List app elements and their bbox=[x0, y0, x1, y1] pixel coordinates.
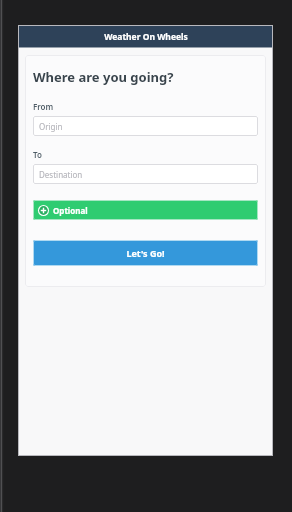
staticText: Destination bbox=[39, 169, 83, 180]
button[interactable]: Let's Go! bbox=[33, 240, 258, 266]
button[interactable]: Destination bbox=[33, 164, 258, 184]
staticText: Origin bbox=[39, 121, 63, 132]
staticText: Let's Go! bbox=[126, 247, 165, 259]
staticText: Weather On Wheels bbox=[104, 31, 188, 43]
other: Add optional stop bbox=[38, 205, 49, 216]
staticText: Optional bbox=[53, 205, 88, 216]
staticText: To bbox=[33, 149, 42, 160]
staticText: Where are you going? bbox=[33, 68, 174, 86]
button[interactable]: Origin bbox=[33, 116, 258, 136]
button[interactable]: Add optional stop bbox=[33, 200, 258, 220]
staticText: From bbox=[33, 101, 54, 112]
button[interactable]: Weather On Wheels bbox=[18, 25, 273, 48]
